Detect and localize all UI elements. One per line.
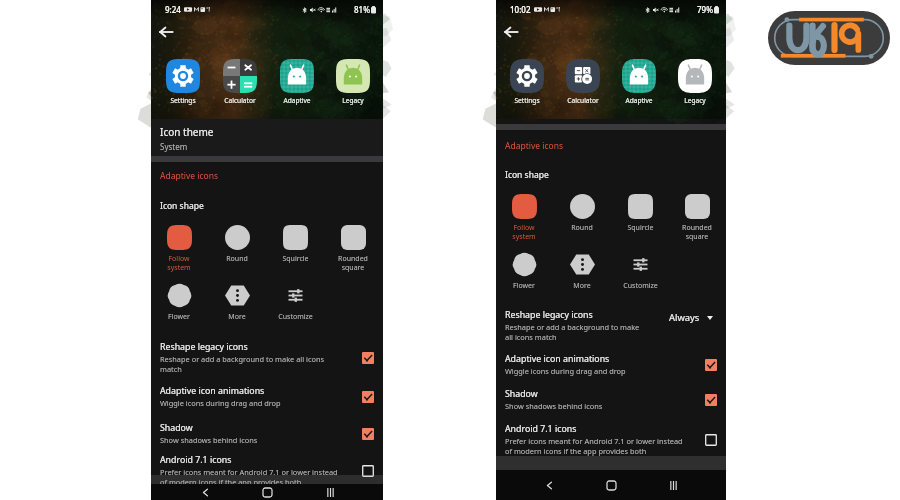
staticText: Follow system bbox=[512, 223, 536, 241]
button[interactable]: Unchecked bbox=[362, 465, 374, 477]
staticText: Show shadows behind icons bbox=[505, 401, 603, 411]
staticText: Adaptive bbox=[283, 96, 311, 105]
staticText: Round bbox=[571, 223, 593, 233]
button[interactable]: Adaptive bbox=[611, 59, 667, 105]
button[interactable]: Rounded square bbox=[324, 225, 382, 272]
staticText: Squircle bbox=[627, 223, 654, 233]
staticText: Rounded square bbox=[338, 254, 368, 272]
staticText: Adaptive icons bbox=[160, 170, 218, 182]
staticText: Icon shape bbox=[160, 200, 204, 212]
staticText: Android 7.1 icons bbox=[160, 454, 232, 466]
button[interactable]: Legacy bbox=[667, 59, 723, 105]
staticText: Show shadows behind icons bbox=[160, 435, 258, 445]
button[interactable]: Checked bbox=[705, 359, 717, 371]
button[interactable]: Flower bbox=[150, 283, 208, 322]
staticText: Settings bbox=[170, 96, 196, 105]
button[interactable]: Checked bbox=[705, 394, 717, 406]
button[interactable]: Back bbox=[540, 476, 558, 494]
button[interactable]: Reshape legacy icons bbox=[496, 309, 726, 342]
button[interactable]: Squircle bbox=[266, 225, 324, 264]
staticText: 9:24 bbox=[165, 4, 181, 15]
button[interactable]: Checked bbox=[362, 391, 374, 403]
staticText: Shadow bbox=[160, 422, 193, 434]
staticText: 79% bbox=[697, 4, 713, 15]
button[interactable]: Back bbox=[156, 22, 176, 42]
staticText: Adaptive icon animations bbox=[160, 385, 265, 397]
button[interactable]: Checked bbox=[362, 352, 374, 364]
staticText: Reshape or add a background to make all … bbox=[160, 354, 325, 374]
staticText: More bbox=[573, 281, 591, 291]
button[interactable]: Squircle bbox=[611, 194, 669, 233]
staticText: Round bbox=[226, 254, 248, 264]
staticText: Calculator bbox=[567, 96, 599, 105]
button[interactable]: Android 7.1 icons bbox=[496, 423, 726, 456]
button[interactable]: Shadow bbox=[151, 422, 383, 445]
button[interactable]: Android 7.1 icons bbox=[151, 454, 383, 487]
button[interactable]: Settings bbox=[499, 59, 555, 105]
staticText: 10:02 bbox=[510, 4, 531, 15]
staticText: Squircle bbox=[282, 254, 309, 264]
staticText: Wiggle icons during drag and drop bbox=[160, 398, 281, 408]
staticText: Reshape legacy icons bbox=[505, 309, 593, 321]
button[interactable]: Flower bbox=[495, 252, 553, 291]
staticText: Android 7.1 icons bbox=[505, 423, 577, 435]
staticText: Settings bbox=[514, 96, 540, 105]
button[interactable]: Back bbox=[196, 484, 214, 500]
staticText: 81% bbox=[354, 4, 370, 15]
button[interactable]: Adaptive icon animations bbox=[151, 385, 383, 408]
staticText: Legacy bbox=[684, 96, 706, 105]
button[interactable]: Rounded square bbox=[669, 194, 725, 241]
staticText: Adaptive icon animations bbox=[505, 353, 610, 365]
staticText: Icon theme bbox=[160, 125, 214, 139]
button[interactable]: Customize bbox=[266, 283, 324, 322]
button[interactable]: Calculator bbox=[555, 59, 611, 105]
button[interactable]: More bbox=[208, 283, 266, 322]
staticText: Prefer icons meant for Android 7.1 or lo… bbox=[505, 436, 683, 456]
button[interactable]: Calculator bbox=[211, 59, 268, 105]
button[interactable]: Follow system bbox=[150, 225, 208, 272]
staticText: Wiggle icons during drag and drop bbox=[505, 366, 626, 376]
button[interactable]: More bbox=[553, 252, 611, 291]
button[interactable]: Round bbox=[553, 194, 611, 233]
button[interactable]: Round bbox=[208, 225, 266, 264]
button[interactable]: Recent apps bbox=[664, 476, 682, 494]
button[interactable]: Icon theme bbox=[151, 119, 383, 157]
staticText: Always bbox=[669, 311, 700, 324]
button[interactable]: Adaptive bbox=[268, 59, 325, 105]
staticText: Prefer icons meant for Android 7.1 or lo… bbox=[160, 467, 338, 487]
staticText: Icon shape bbox=[505, 169, 549, 181]
button[interactable]: Home bbox=[602, 476, 620, 494]
staticText: Shadow bbox=[505, 388, 538, 400]
button[interactable]: Customize bbox=[611, 252, 669, 291]
staticText: Customize bbox=[278, 312, 313, 322]
staticText: System bbox=[160, 141, 188, 152]
staticText: Adaptive icons bbox=[505, 140, 563, 152]
staticText: Flower bbox=[513, 281, 535, 291]
button[interactable]: Follow system bbox=[495, 194, 553, 241]
button[interactable]: Adaptive icon animations bbox=[496, 353, 726, 376]
staticText: Flower bbox=[168, 312, 190, 322]
staticText: More bbox=[228, 312, 246, 322]
staticText: Rounded square bbox=[682, 223, 712, 241]
staticText: Calculator bbox=[224, 96, 256, 105]
button[interactable]: Reshape legacy icons bbox=[151, 341, 383, 374]
staticText: Adaptive bbox=[625, 96, 653, 105]
button[interactable]: Unchecked bbox=[705, 434, 717, 446]
button[interactable]: Shadow bbox=[496, 388, 726, 411]
button[interactable]: Settings bbox=[154, 59, 211, 105]
button[interactable]: Legacy bbox=[325, 59, 380, 105]
button[interactable]: Recent apps bbox=[321, 484, 339, 500]
button[interactable]: Always bbox=[669, 311, 717, 324]
button[interactable]: Home bbox=[258, 484, 276, 500]
staticText: Follow system bbox=[167, 254, 191, 272]
staticText: Customize bbox=[623, 281, 658, 291]
button[interactable]: Back bbox=[501, 22, 521, 42]
button[interactable]: Checked bbox=[362, 428, 374, 440]
staticText: Reshape legacy icons bbox=[160, 341, 248, 353]
staticText: Legacy bbox=[342, 96, 364, 105]
staticText: Reshape or add a background to make all … bbox=[505, 322, 640, 342]
